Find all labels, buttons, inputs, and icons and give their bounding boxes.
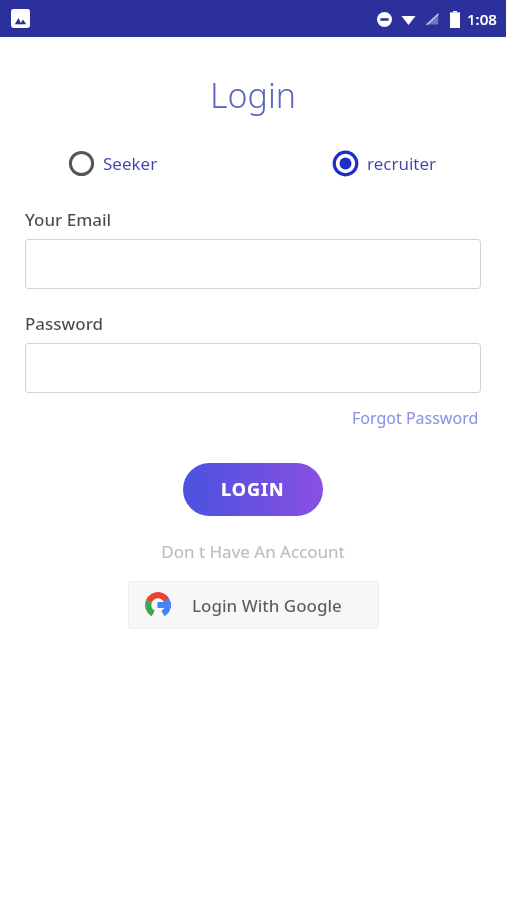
- staticText: Password: [25, 312, 104, 335]
- staticText: Your Email: [25, 208, 112, 231]
- button[interactable]: Google logo: [128, 581, 379, 629]
- staticText: recruiter: [367, 152, 437, 175]
- button[interactable]: [25, 343, 481, 393]
- button[interactable]: Forgot Password: [350, 405, 481, 431]
- button[interactable]: recruiter: [331, 147, 439, 180]
- staticText: Login: [25, 72, 481, 118]
- button[interactable]: Seeker: [67, 147, 160, 180]
- button[interactable]: Don t Have An Account: [25, 540, 481, 563]
- button[interactable]: LOGIN: [183, 463, 323, 516]
- staticText: 1:08: [467, 9, 497, 29]
- staticText: Forgot Password: [352, 407, 479, 429]
- staticText: LOGIN: [221, 477, 285, 502]
- staticText: Login With Google: [192, 594, 342, 617]
- other: Google logo: [144, 591, 172, 619]
- staticText: Seeker: [103, 152, 158, 175]
- button[interactable]: [25, 239, 481, 289]
